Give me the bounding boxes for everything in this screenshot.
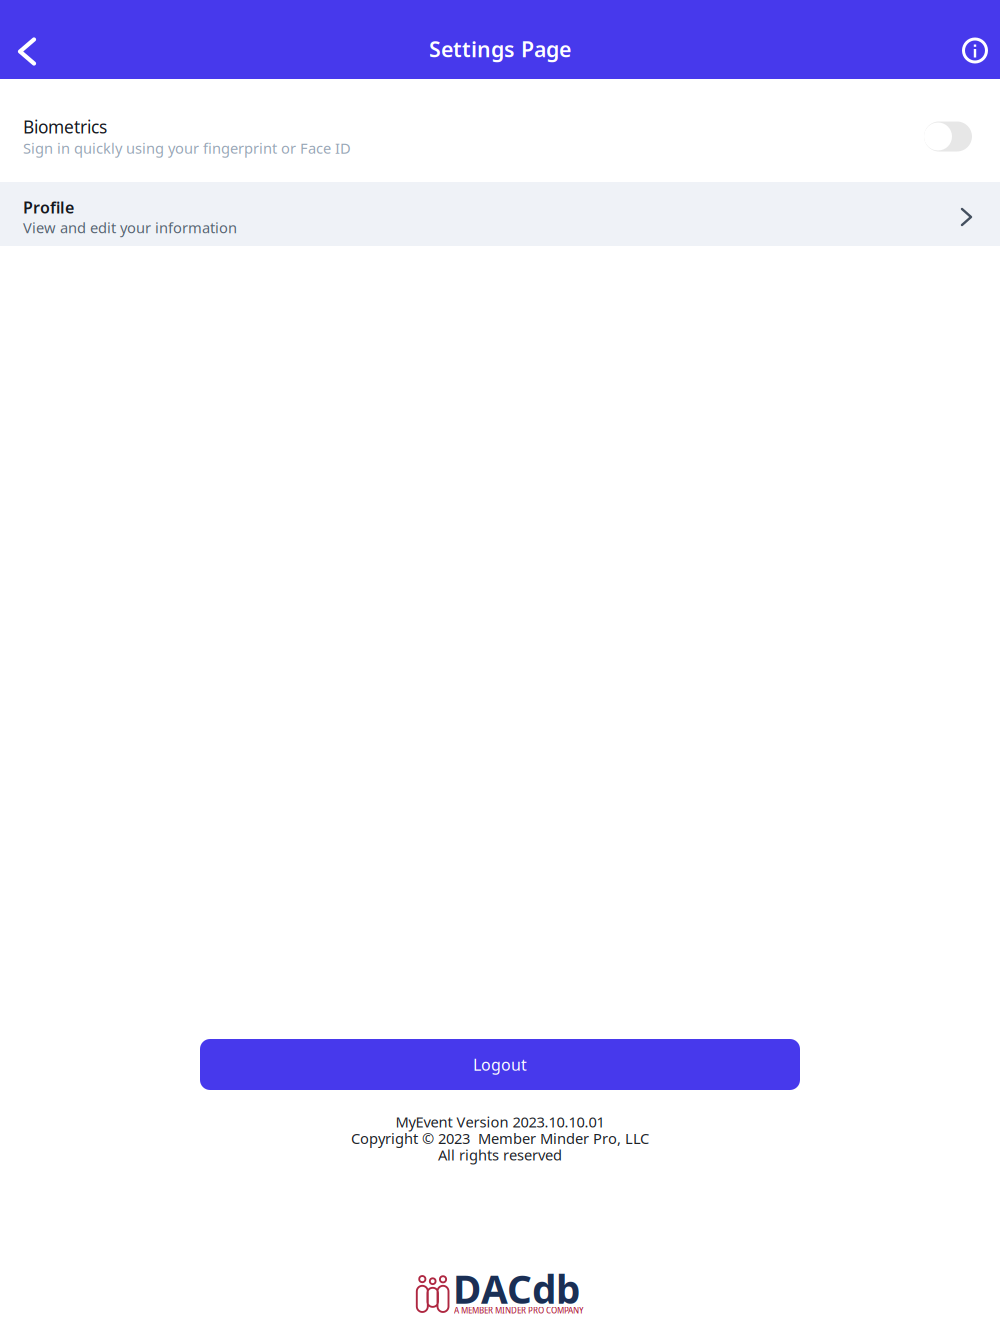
staticText: View and edit your information: [23, 218, 237, 237]
staticText: Logout: [473, 1054, 527, 1075]
staticText: Copyright © 2023 Member Minder Pro, LLC: [351, 1128, 649, 1148]
button[interactable]: Biometrics: [0, 79, 1000, 182]
button[interactable]: Information: [946, 3, 1000, 75]
staticText: A MEMBER MINDER PRO COMPANY: [454, 1305, 584, 1316]
button[interactable]: Profile: [0, 182, 1000, 246]
button[interactable]: Logout: [200, 1039, 800, 1090]
staticText: All rights reserved: [438, 1145, 562, 1164]
button[interactable]: Back: [0, 3, 50, 75]
staticText: DACdb: [453, 1263, 580, 1314]
staticText: Settings Page: [429, 35, 571, 63]
staticText: Profile: [23, 197, 74, 218]
staticText: MyEvent Version 2023.10.10.01: [395, 1112, 604, 1131]
staticText: Biometrics: [23, 115, 107, 138]
staticText: Sign in quickly using your fingerprint o…: [23, 138, 351, 158]
